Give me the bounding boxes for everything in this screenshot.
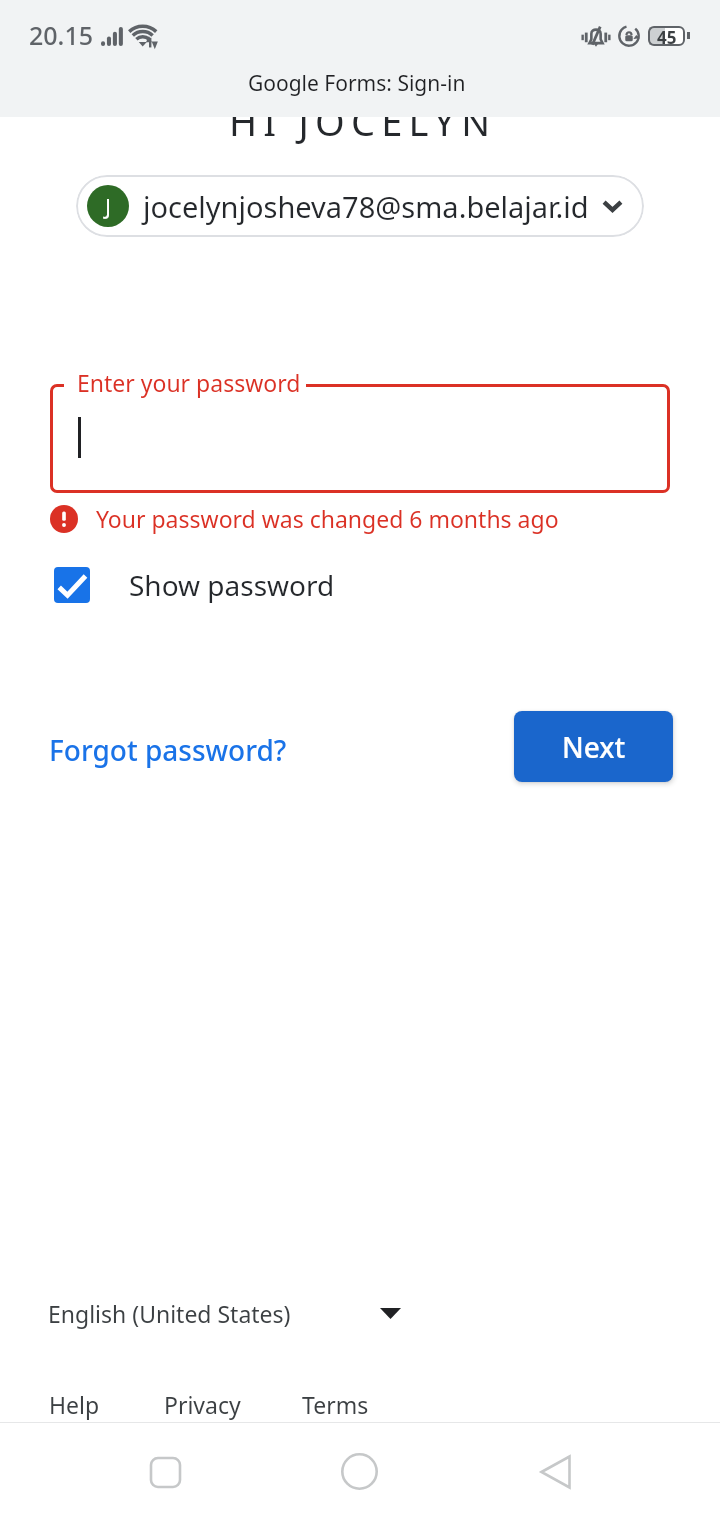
button[interactable]: Back	[519, 1435, 592, 1508]
staticText: HI JOCELYN	[229, 95, 497, 147]
button[interactable]: Privacy	[156, 1384, 249, 1425]
button[interactable]: Terms	[294, 1384, 377, 1425]
staticText: J	[105, 191, 112, 221]
staticText: Terms	[302, 1389, 369, 1420]
button[interactable]: Enter your password	[50, 384, 670, 493]
staticText: jocelynjosheva78@sma.belajar.id	[143, 187, 589, 226]
button[interactable]: Next	[514, 711, 673, 782]
button[interactable]: Home	[323, 1435, 396, 1508]
staticText: Help	[49, 1389, 100, 1420]
staticText: English (United States)	[48, 1298, 291, 1329]
button[interactable]: English (United States)	[40, 1294, 409, 1333]
button[interactable]: Show password	[54, 562, 335, 608]
staticText: Google Forms: Sign-in	[248, 69, 466, 98]
staticText: Next	[562, 728, 626, 766]
staticText: Show password	[129, 566, 335, 604]
button[interactable]: J	[76, 175, 644, 237]
staticText: Forgot password?	[49, 731, 287, 769]
staticText: 20.15	[29, 18, 94, 52]
staticText: 45	[657, 26, 677, 46]
button[interactable]: Help	[41, 1384, 108, 1425]
staticText: Privacy	[164, 1389, 241, 1420]
staticText: Enter your password	[77, 367, 301, 398]
button[interactable]: Recent apps	[129, 1436, 202, 1509]
staticText: Your password was changed 6 months ago	[96, 503, 559, 534]
button[interactable]: Forgot password?	[40, 724, 296, 776]
